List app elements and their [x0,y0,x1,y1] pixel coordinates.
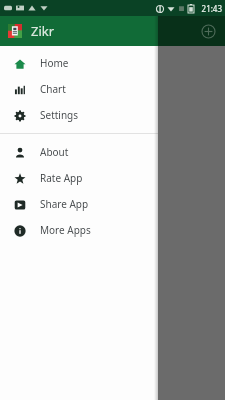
staticText: 3 [35,64,43,82]
staticText: Zikr [31,22,55,40]
staticText: More Apps [40,223,91,237]
button[interactable]: More Apps [0,217,158,243]
staticText: Settings [40,108,79,122]
button[interactable]: Rate App [0,165,158,191]
button[interactable]: 3 [26,60,52,85]
staticText: Home [40,56,69,70]
button[interactable]: Home [0,50,158,76]
staticText: Rate App [40,171,83,185]
staticText: Share App [40,197,89,211]
button[interactable]: Settings [0,102,158,128]
button[interactable]: Chart [0,76,158,102]
staticText: About [40,145,69,159]
button[interactable]: Share App [0,191,158,217]
button[interactable]: About [0,139,158,165]
button[interactable]: Add [191,16,225,46]
staticText: Chart [40,82,66,96]
staticText: 21:43 [201,3,222,14]
